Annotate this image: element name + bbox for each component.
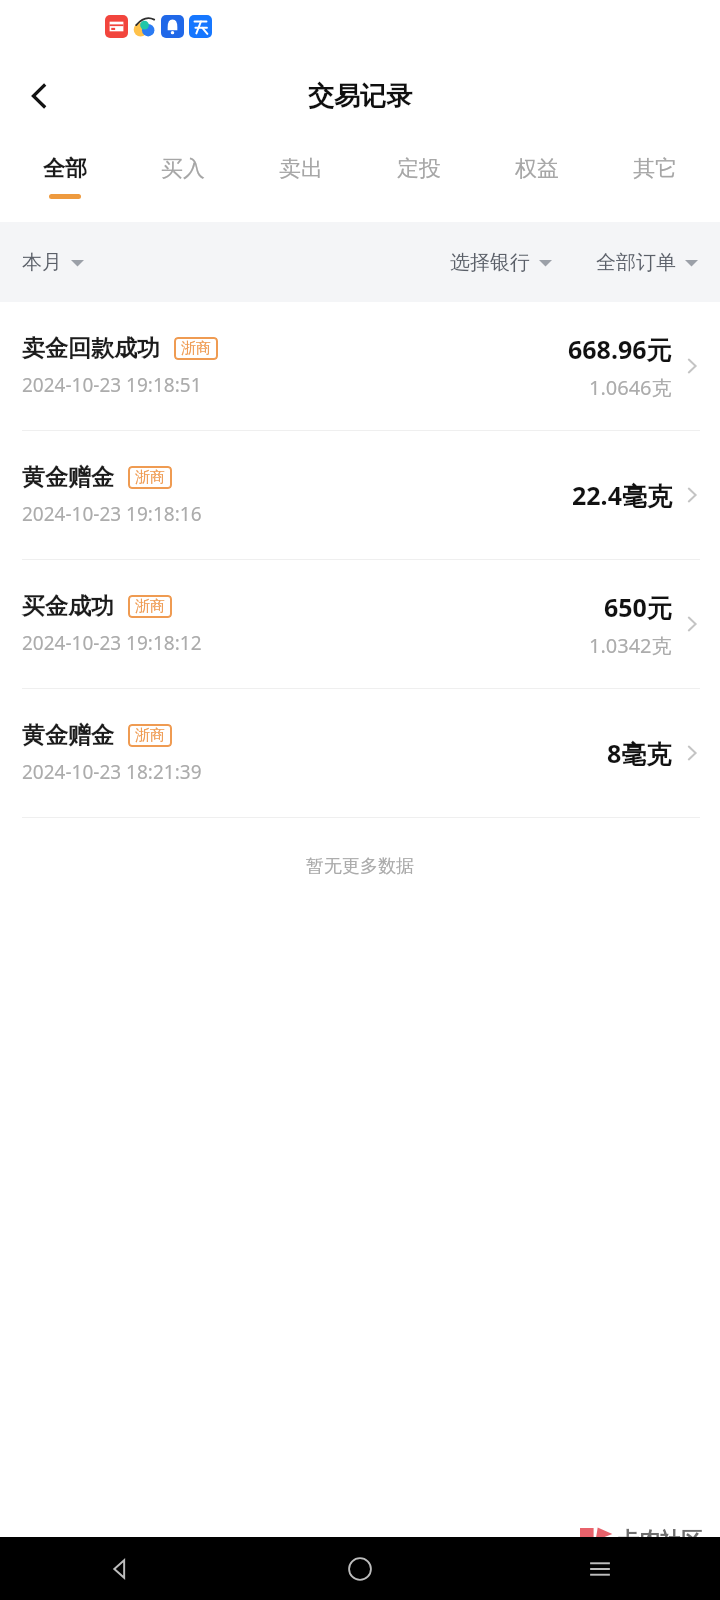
staticText: 卖金回款成功 bbox=[22, 334, 160, 363]
button[interactable]: Home bbox=[240, 1537, 480, 1600]
staticText: 浙商 bbox=[135, 468, 165, 487]
staticText: 黄金赠金 bbox=[22, 463, 114, 492]
staticText: 卖出 bbox=[279, 155, 323, 183]
button[interactable]: Back bbox=[6, 63, 72, 129]
button[interactable]: 权益 bbox=[478, 140, 596, 222]
staticText: 2024-10-23 18:21:39 bbox=[22, 759, 202, 785]
staticText: 权益 bbox=[515, 155, 559, 183]
staticText: 1.0342克 bbox=[589, 632, 672, 659]
staticText: 定投 bbox=[397, 155, 441, 183]
staticText: 卡农社区 bbox=[618, 1527, 702, 1553]
button[interactable]: 买金成功 bbox=[0, 560, 720, 688]
button[interactable]: 本月 bbox=[22, 242, 84, 283]
staticText: 2024-10-23 19:18:16 bbox=[22, 501, 202, 527]
button[interactable]: 其它 bbox=[596, 140, 714, 222]
staticText: 22.4毫克 bbox=[572, 478, 672, 512]
button[interactable]: 黄金赠金 bbox=[0, 689, 720, 817]
staticText: 1.0646克 bbox=[589, 374, 672, 401]
staticText: 交易记录 bbox=[308, 80, 412, 113]
staticText: 买金成功 bbox=[22, 592, 114, 621]
staticText: 暂无更多数据 bbox=[306, 855, 414, 878]
staticText: 本月 bbox=[22, 250, 62, 275]
staticText: 全部订单 bbox=[596, 250, 676, 275]
staticText: 668.96元 bbox=[568, 332, 672, 366]
staticText: 全部 bbox=[43, 155, 87, 183]
staticText: 选择银行 bbox=[450, 250, 530, 275]
staticText: 浙商 bbox=[135, 597, 165, 616]
button[interactable]: 全部 bbox=[6, 140, 124, 222]
button[interactable]: 选择银行 bbox=[450, 242, 552, 283]
button[interactable]: 卖出 bbox=[242, 140, 360, 222]
button[interactable]: Recent apps bbox=[480, 1537, 720, 1600]
staticText: 浙商 bbox=[181, 339, 211, 358]
staticText: 浙商 bbox=[135, 726, 165, 745]
staticText: 黄金赠金 bbox=[22, 721, 114, 750]
staticText: 其它 bbox=[633, 155, 677, 183]
button[interactable]: 定投 bbox=[360, 140, 478, 222]
staticText: 金 融 在 线 教 育 bbox=[601, 1557, 682, 1572]
staticText: 2024-10-23 19:18:12 bbox=[22, 630, 202, 656]
staticText: 2024-10-23 19:18:51 bbox=[22, 372, 202, 398]
button[interactable]: 黄金赠金 bbox=[0, 431, 720, 559]
button[interactable]: Back bbox=[0, 1537, 240, 1600]
staticText: 买入 bbox=[161, 155, 205, 183]
staticText: 8毫克 bbox=[607, 736, 672, 770]
staticText: 650元 bbox=[604, 590, 672, 624]
button[interactable]: 全部订单 bbox=[596, 242, 698, 283]
button[interactable]: 卖金回款成功 bbox=[0, 302, 720, 430]
button[interactable]: 买入 bbox=[124, 140, 242, 222]
